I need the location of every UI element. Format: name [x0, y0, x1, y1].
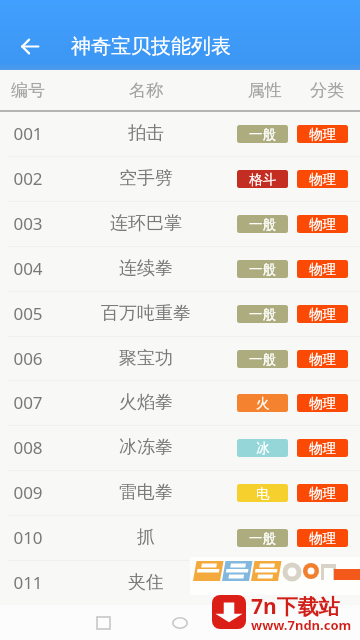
staticText: 分类 [237, 80, 360, 101]
staticText: 火 [256, 395, 270, 412]
staticText: 物理 [309, 306, 336, 323]
button[interactable]: 物理 [297, 394, 348, 412]
staticText: 物理 [309, 216, 336, 233]
staticText: 008 [0, 436, 118, 459]
button[interactable]: 006 [0, 336, 360, 381]
button[interactable]: 002 [0, 156, 360, 201]
button[interactable]: 010 [0, 515, 360, 560]
staticText: 空手劈 [56, 167, 236, 190]
staticText: 一般 [249, 575, 276, 592]
staticText: 004 [0, 257, 118, 280]
staticText: 一般 [249, 261, 276, 278]
staticText: 属性 [175, 80, 355, 101]
button[interactable]: 物理 [297, 529, 348, 547]
button[interactable]: Back [8, 25, 51, 68]
button[interactable]: 008 [0, 425, 360, 470]
staticText: 神奇宝贝技能列表 [71, 34, 231, 59]
staticText: 物理 [309, 530, 336, 547]
staticText: 007 [0, 391, 118, 414]
staticText: 002 [0, 167, 118, 190]
button[interactable]: 火 [237, 394, 288, 412]
staticText: 拍击 [56, 122, 236, 145]
staticText: 物理 [309, 485, 336, 502]
staticText: 005 [0, 302, 118, 325]
staticText: 冰 [256, 440, 270, 457]
button[interactable]: 物理 [297, 305, 348, 323]
staticText: 连续拳 [56, 257, 236, 280]
staticText: 电 [256, 485, 270, 502]
staticText: 物理 [309, 126, 336, 143]
staticText: 一般 [249, 530, 276, 547]
button[interactable]: 格斗 [237, 170, 288, 188]
staticText: 011 [0, 571, 118, 594]
button[interactable]: 009 [0, 470, 360, 515]
button[interactable]: 一般 [237, 305, 288, 323]
button[interactable]: 一般 [237, 125, 288, 143]
button[interactable]: 物理 [297, 350, 348, 368]
button[interactable]: 005 [0, 291, 360, 336]
button[interactable]: Recents [81, 605, 125, 640]
button[interactable]: 物理 [297, 439, 348, 457]
button[interactable]: 003 [0, 201, 360, 246]
button[interactable]: 物理 [297, 574, 348, 592]
button[interactable]: 007 [0, 380, 360, 425]
staticText: 物理 [309, 351, 336, 368]
staticText: 一般 [249, 216, 276, 233]
staticText: 006 [0, 347, 118, 370]
staticText: 010 [0, 526, 118, 549]
button[interactable]: 物理 [297, 215, 348, 233]
button[interactable]: 001 [0, 111, 360, 156]
staticText: 物理 [309, 171, 336, 188]
staticText: 7n下载站 [251, 592, 340, 621]
button[interactable]: 物理 [297, 260, 348, 278]
staticText: 物理 [309, 575, 336, 592]
staticText: 火焰拳 [56, 391, 236, 414]
button[interactable]: Home [158, 605, 202, 640]
button[interactable]: 物理 [297, 484, 348, 502]
button[interactable]: 一般 [237, 529, 288, 547]
button[interactable]: 一般 [237, 215, 288, 233]
staticText: 009 [0, 481, 118, 504]
button[interactable]: 一般 [237, 574, 288, 592]
button[interactable]: 011 [0, 560, 360, 605]
staticText: 物理 [309, 440, 336, 457]
staticText: www.7ndn.com [251, 616, 352, 634]
button[interactable]: 004 [0, 246, 360, 291]
staticText: 格斗 [249, 171, 276, 188]
staticText: 003 [0, 212, 118, 235]
staticText: 物理 [309, 261, 336, 278]
button[interactable]: 物理 [297, 125, 348, 143]
staticText: 聚宝功 [56, 347, 236, 370]
button[interactable]: 一般 [237, 350, 288, 368]
staticText: 冰冻拳 [56, 436, 236, 459]
staticText: 连环巴掌 [56, 212, 236, 235]
button[interactable]: 物理 [297, 170, 348, 188]
staticText: 一般 [249, 126, 276, 143]
staticText: 雷电拳 [56, 481, 236, 504]
staticText: 编号 [0, 80, 118, 101]
staticText: 夹住 [56, 571, 236, 594]
staticText: 抓 [56, 526, 236, 549]
button[interactable]: 一般 [237, 260, 288, 278]
staticText: 百万吨重拳 [56, 302, 236, 325]
staticText: 名称 [56, 80, 236, 101]
staticText: 001 [0, 122, 118, 145]
button[interactable]: 电 [237, 484, 288, 502]
staticText: 一般 [249, 351, 276, 368]
button[interactable]: 冰 [237, 439, 288, 457]
staticText: 物理 [309, 395, 336, 412]
staticText: 一般 [249, 306, 276, 323]
